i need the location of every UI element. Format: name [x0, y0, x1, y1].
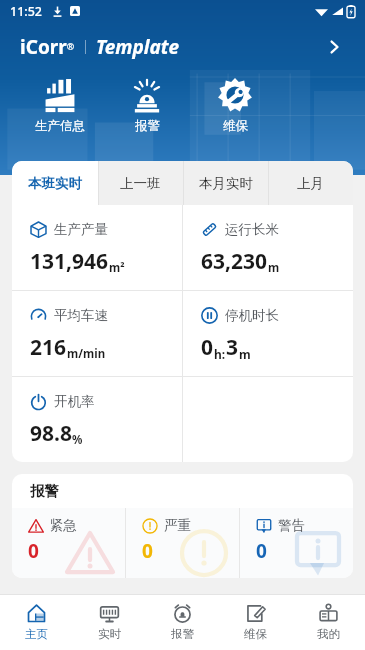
staticText: 本月实时 [199, 175, 253, 192]
staticText: 主页 [25, 627, 48, 641]
staticText: 98.8 [30, 419, 72, 448]
button[interactable]: 警告 [240, 508, 353, 578]
staticText: m² [109, 260, 125, 276]
staticText: 生产产量 [54, 221, 108, 238]
button[interactable]: 我的 [292, 594, 365, 650]
staticText: 我的 [317, 627, 340, 641]
staticText: m [239, 346, 251, 362]
button[interactable]: 本班实时 [12, 161, 98, 205]
staticText: 警告 [278, 517, 305, 534]
button[interactable]: 平均车速 [12, 291, 182, 376]
staticText: Template [96, 34, 180, 60]
staticText: 维保 [223, 118, 248, 134]
button[interactable]: 报警 [146, 594, 219, 650]
staticText: 上月 [297, 175, 324, 192]
staticText: 11:52 [10, 3, 43, 20]
staticText: h: [214, 346, 226, 362]
staticText: 本班实时 [28, 175, 82, 192]
staticText: 216 [30, 333, 67, 362]
staticText: 报警 [135, 118, 160, 134]
button[interactable]: 生产产量 [12, 205, 182, 290]
staticText: 紧急 [50, 517, 77, 534]
button[interactable]: 生产信息 [16, 76, 103, 154]
staticText: 上一班 [120, 175, 161, 192]
button[interactable]: 本月实时 [183, 161, 268, 205]
button[interactable]: 上月 [268, 161, 353, 205]
staticText: 开机率 [54, 393, 95, 410]
staticText: m/min [67, 346, 106, 362]
staticText: 生产信息 [35, 118, 85, 134]
staticText: 运行长米 [225, 221, 279, 238]
button[interactable]: 严重 [126, 508, 239, 578]
staticText: iCorr® [20, 34, 75, 60]
staticText: 平均车速 [54, 307, 108, 324]
staticText: 131,946 [30, 247, 109, 276]
staticText: 停机时长 [225, 307, 279, 324]
staticText: 严重 [164, 517, 191, 534]
button[interactable]: 运行长米 [183, 205, 353, 290]
staticText: 实时 [98, 627, 121, 641]
staticText: % [72, 432, 83, 448]
button[interactable]: 维保 [191, 76, 279, 154]
button[interactable]: 主页 [0, 594, 73, 650]
button[interactable]: 实时 [73, 594, 146, 650]
staticText: 3 [226, 333, 239, 362]
staticText: 0 [28, 538, 39, 564]
button[interactable]: 紧急 [12, 508, 125, 578]
button[interactable]: 开机率 [12, 377, 182, 462]
staticText: 0 [256, 538, 267, 564]
button[interactable]: More [317, 30, 351, 64]
button[interactable]: 维保 [219, 594, 292, 650]
staticText: 维保 [244, 627, 267, 641]
staticText: 报警 [171, 627, 194, 641]
button[interactable]: 上一班 [98, 161, 183, 205]
staticText: m [268, 260, 280, 276]
button[interactable]: 停机时长 [183, 291, 353, 376]
staticText: 63,230 [201, 247, 268, 276]
staticText: 0 [201, 333, 214, 362]
staticText: 0 [142, 538, 153, 564]
button[interactable]: 报警 [103, 76, 191, 154]
staticText: 报警 [30, 482, 59, 500]
